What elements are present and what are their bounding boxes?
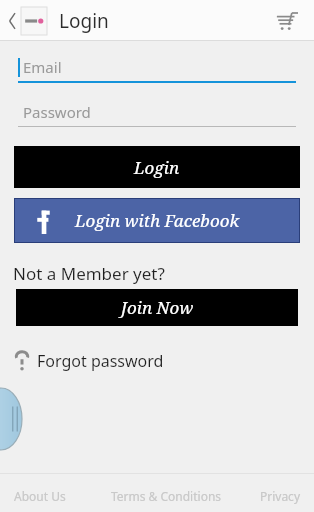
staticText: Not a Member yet? [13,262,165,285]
staticText: Login [59,8,109,34]
staticText: Login [134,156,180,179]
button[interactable]: Login [14,146,300,188]
button[interactable]: Forgot password [14,350,164,372]
staticText: About Us [14,488,106,504]
staticText: Login with Facebook [75,209,240,232]
button[interactable]: Open side panel [0,388,22,450]
staticText: Join Now [121,296,194,319]
button[interactable]: Terms & Conditions [106,488,226,504]
staticText: Forgot password [37,350,164,372]
button[interactable]: Join Now [16,289,298,326]
button[interactable]: Back [4,7,51,35]
button[interactable]: About Us [14,488,106,504]
staticText: Password [23,102,91,122]
button[interactable]: Cart [270,4,304,38]
staticText: Email [23,57,62,77]
staticText: Terms & Conditions [106,488,226,504]
button[interactable]: Password [18,102,296,127]
button[interactable]: Privacy [226,488,300,504]
button[interactable]: Login with Facebook [15,199,299,242]
button[interactable]: Email [18,57,296,83]
staticText: Privacy [226,488,300,504]
